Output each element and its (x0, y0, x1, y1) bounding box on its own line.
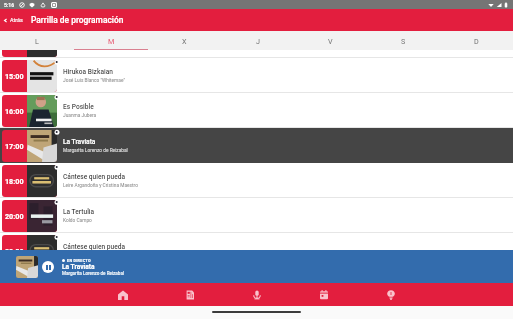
staticText: EN DIRECTO (67, 258, 91, 262)
staticText: Es Posible (63, 103, 94, 111)
button[interactable]: 17:00 (0, 128, 513, 163)
button[interactable]: 20:50 (0, 233, 513, 250)
button[interactable]: L (0, 31, 74, 50)
staticText: Koldo Campo (63, 218, 92, 224)
staticText: Juanma Jubera (63, 113, 97, 119)
staticText: 18:00 (5, 177, 24, 185)
staticText: La Traviata (63, 138, 96, 146)
button[interactable]: Noticias (156, 283, 223, 306)
button[interactable]: 16:00 (0, 93, 513, 128)
button[interactable]: 15:00 (0, 58, 513, 93)
button[interactable]: Atrás (0, 9, 26, 31)
staticText: V (328, 37, 333, 45)
staticText: L (35, 37, 39, 45)
button[interactable]: 20:00 (0, 198, 513, 233)
staticText: 5:16 (4, 2, 15, 8)
staticText: Margarita Lorenzo de Reizabal (63, 148, 128, 154)
staticText: La Traviata (62, 263, 95, 271)
button[interactable]: Descubrir (357, 283, 424, 306)
staticText: S (401, 37, 406, 45)
staticText: José Luis Blanco "Whitemae" (63, 78, 125, 84)
staticText: Parrilla de programación (31, 15, 124, 25)
button[interactable]: M (74, 31, 148, 50)
staticText: M (108, 37, 115, 45)
staticText: Hirukoa Bizkaian (63, 68, 113, 76)
staticText: 16:00 (5, 107, 24, 115)
staticText: 17:00 (5, 142, 24, 150)
button[interactable]: S (367, 31, 440, 50)
staticText: J (256, 37, 260, 45)
staticText: Cántese quien pueda (63, 173, 126, 181)
staticText: La Tertulia (63, 208, 95, 216)
button[interactable]: Radio (223, 283, 290, 306)
staticText: Leire Argandoña y Cristina Maestro (63, 183, 138, 189)
staticText: 20:50 (5, 247, 24, 250)
staticText: Atrás (10, 17, 23, 23)
button[interactable]: X (148, 31, 221, 50)
button[interactable]: V (294, 31, 367, 50)
button[interactable]: Programación (290, 283, 357, 306)
button[interactable]: 18:00 (0, 163, 513, 198)
button[interactable]: Pause (0, 250, 513, 283)
button[interactable]: D (440, 31, 513, 50)
staticText: 15:00 (5, 72, 24, 80)
staticText: Margarita Lorenzo de Reizabal (62, 271, 125, 276)
button[interactable]: 14:00 (0, 50, 513, 58)
button[interactable]: Pause (42, 261, 54, 273)
button[interactable]: J (221, 31, 294, 50)
staticText: D (474, 37, 479, 45)
staticText: X (182, 37, 187, 45)
button[interactable]: Inicio (89, 283, 156, 306)
staticText: 20:00 (5, 212, 24, 220)
staticText: Cántese quien pueda (63, 243, 126, 250)
